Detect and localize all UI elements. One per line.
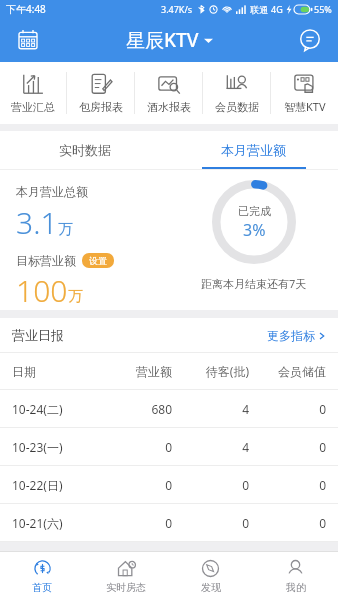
staticText: 0 bbox=[249, 401, 326, 417]
button[interactable]: 首页 bbox=[0, 552, 84, 600]
staticText: 3.47K/s bbox=[161, 3, 193, 15]
button[interactable]: 10-21(六) bbox=[0, 504, 338, 541]
staticText: 4G bbox=[271, 3, 283, 15]
button[interactable]: 营业汇总 bbox=[0, 62, 66, 124]
staticText: 55% bbox=[314, 3, 332, 15]
staticText: 4 bbox=[172, 401, 249, 417]
staticText: 0 bbox=[172, 515, 249, 531]
staticText: 0 bbox=[249, 515, 326, 531]
staticText: 营业日报 bbox=[12, 327, 64, 343]
button[interactable]: 包房报表 bbox=[67, 62, 134, 124]
button[interactable]: 我的 bbox=[253, 552, 338, 600]
staticText: 酒水报表 bbox=[147, 100, 191, 114]
staticText: 本月营业额 bbox=[221, 142, 286, 158]
staticText: 设置 bbox=[89, 255, 107, 266]
staticText: 万 bbox=[68, 287, 83, 306]
button[interactable]: 会员数据 bbox=[203, 62, 270, 124]
button[interactable]: 实时房态 bbox=[84, 552, 168, 600]
staticText: 10-23(一) bbox=[12, 439, 95, 455]
staticText: 0 bbox=[172, 477, 249, 493]
staticText: 会员数据 bbox=[215, 100, 259, 114]
button[interactable]: 10-23(一) bbox=[0, 428, 338, 465]
button[interactable]: 本月营业额 bbox=[169, 131, 338, 169]
staticText: 更多指标 bbox=[267, 328, 315, 343]
staticText: 会员储值 bbox=[249, 364, 326, 379]
staticText: 0 bbox=[249, 439, 326, 455]
staticText: 营业额 bbox=[95, 364, 172, 379]
button[interactable]: 10-24(二) bbox=[0, 390, 338, 427]
button[interactable]: 10-22(日) bbox=[0, 466, 338, 503]
staticText: 星辰KTV bbox=[126, 27, 199, 53]
staticText: 10-21(六) bbox=[12, 515, 95, 531]
staticText: 距离本月结束还有7天 bbox=[201, 276, 307, 291]
staticText: 实时数据 bbox=[59, 142, 111, 158]
staticText: 发现 bbox=[201, 581, 221, 594]
staticText: 已完成 bbox=[238, 204, 271, 218]
staticText: 万 bbox=[58, 220, 73, 239]
staticText: 0 bbox=[95, 515, 172, 531]
button[interactable]: 发现 bbox=[168, 552, 253, 600]
staticText: 智慧KTV bbox=[284, 99, 326, 114]
staticText: 下午4:48 bbox=[6, 2, 46, 16]
staticText: 包房报表 bbox=[79, 100, 123, 114]
staticText: 0 bbox=[95, 477, 172, 493]
button[interactable]: 设置 bbox=[82, 253, 114, 268]
staticText: 3.1 bbox=[16, 202, 58, 243]
staticText: 实时房态 bbox=[106, 581, 146, 594]
button[interactable]: Calendar bbox=[12, 24, 44, 56]
staticText: 首页 bbox=[32, 581, 52, 594]
staticText: 我的 bbox=[286, 581, 306, 594]
staticText: 100 bbox=[16, 270, 68, 310]
button[interactable]: 实时数据 bbox=[0, 131, 169, 169]
button[interactable]: 更多指标 bbox=[267, 328, 326, 343]
button[interactable]: 智慧KTV bbox=[271, 62, 338, 124]
button[interactable]: 酒水报表 bbox=[135, 62, 202, 124]
staticText: 日期 bbox=[12, 364, 95, 379]
staticText: 3% bbox=[243, 219, 266, 241]
button[interactable]: 星辰KTV bbox=[126, 27, 213, 53]
staticText: 10-24(二) bbox=[12, 401, 95, 417]
staticText: 4 bbox=[172, 439, 249, 455]
staticText: 10-22(日) bbox=[12, 477, 95, 493]
staticText: 0 bbox=[249, 477, 326, 493]
staticText: 目标营业额 bbox=[16, 253, 76, 268]
staticText: 0 bbox=[95, 439, 172, 455]
staticText: 营业汇总 bbox=[11, 100, 55, 114]
staticText: 680 bbox=[95, 401, 172, 417]
staticText: 本月营业总额 bbox=[16, 184, 88, 199]
staticText: 联通 bbox=[250, 4, 268, 15]
button[interactable]: Messages bbox=[294, 24, 326, 56]
staticText: 待客(批) bbox=[172, 363, 249, 379]
